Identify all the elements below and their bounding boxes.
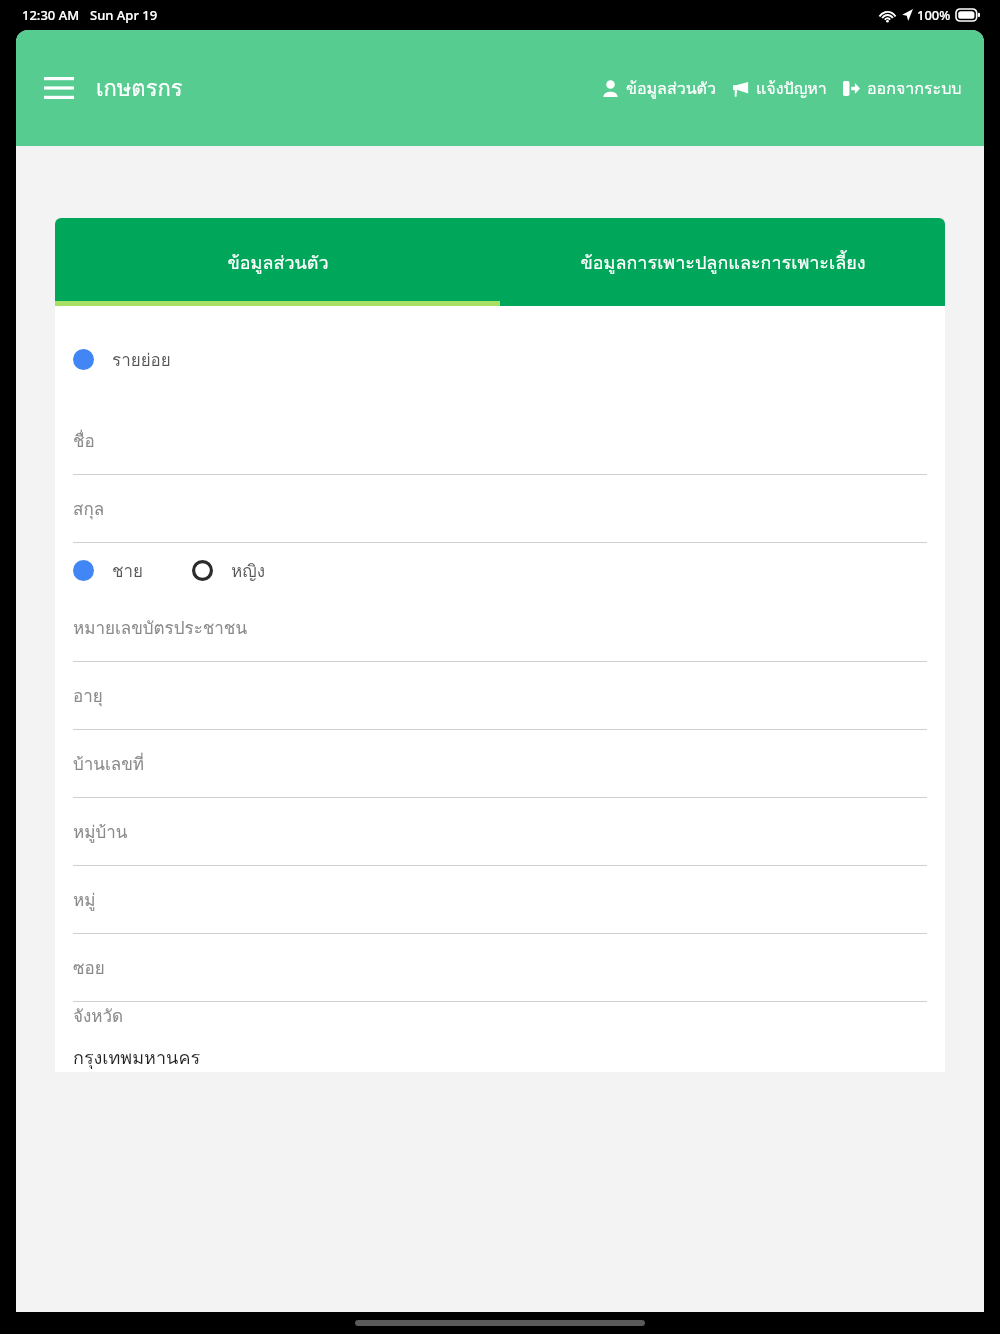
- staticText: ชาย: [112, 557, 144, 584]
- button[interactable]: ข้อมูลส่วนตัว: [602, 76, 716, 101]
- button[interactable]: หมู่: [55, 866, 945, 934]
- button[interactable]: ออกจากระบบ: [843, 76, 962, 101]
- staticText: 12:30 AM: [22, 6, 80, 24]
- staticText: ซอย: [73, 954, 105, 981]
- staticText: หมู่: [73, 886, 96, 913]
- staticText: อายุ: [73, 682, 103, 709]
- staticText: หมายเลขบัตรประชาชน: [73, 614, 248, 641]
- staticText: Sun Apr 19: [90, 6, 158, 24]
- staticText: บ้านเลขที่: [73, 750, 145, 777]
- button[interactable]: ชื่อ: [55, 407, 945, 475]
- staticText: สกุล: [73, 495, 105, 522]
- button[interactable]: ซอย: [55, 934, 945, 1002]
- button[interactable]: รายย่อย: [73, 346, 171, 373]
- staticText: หมู่บ้าน: [73, 818, 128, 845]
- staticText: ข้อมูลส่วนตัว: [626, 76, 716, 101]
- button[interactable]: แจ้งปัญหา: [732, 76, 827, 101]
- staticText: กรุงเทพมหานคร: [73, 1043, 201, 1072]
- button[interactable]: Menu: [38, 67, 80, 109]
- button[interactable]: ชาย: [73, 557, 144, 584]
- staticText: ข้อมูลส่วนตัว: [227, 248, 329, 277]
- staticText: แจ้งปัญหา: [756, 76, 827, 101]
- button[interactable]: หญิง: [192, 557, 265, 584]
- button[interactable]: อายุ: [55, 662, 945, 730]
- staticText: จังหวัด: [73, 1002, 124, 1029]
- staticText: ออกจากระบบ: [867, 76, 962, 101]
- staticText: หญิง: [231, 557, 265, 584]
- button[interactable]: ข้อมูลส่วนตัว: [55, 218, 500, 306]
- button[interactable]: ข้อมูลการเพาะปลูกและการเพาะเลี้ยง: [500, 218, 945, 306]
- staticText: ข้อมูลการเพาะปลูกและการเพาะเลี้ยง: [580, 248, 866, 277]
- button[interactable]: หมู่บ้าน: [55, 798, 945, 866]
- button[interactable]: หมายเลขบัตรประชาชน: [55, 594, 945, 662]
- button[interactable]: สกุล: [55, 475, 945, 543]
- staticText: เกษตรกร: [96, 71, 183, 106]
- staticText: 100%: [917, 6, 951, 24]
- staticText: รายย่อย: [112, 346, 171, 373]
- button[interactable]: บ้านเลขที่: [55, 730, 945, 798]
- staticText: ชื่อ: [73, 427, 95, 454]
